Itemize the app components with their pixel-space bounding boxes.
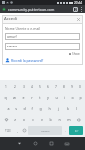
button[interactable]: b bbox=[46, 114, 55, 125]
staticText: y bbox=[47, 95, 49, 100]
staticText: i bbox=[64, 95, 65, 100]
button[interactable]: l bbox=[72, 103, 81, 114]
staticText: t bbox=[39, 95, 41, 100]
button[interactable]: Enter bbox=[69, 126, 83, 135]
button[interactable]: Emoji bbox=[20, 125, 28, 136]
staticText: j bbox=[58, 106, 59, 111]
button[interactable]: d bbox=[20, 103, 28, 114]
staticText: u bbox=[55, 95, 58, 100]
staticText: q bbox=[4, 95, 7, 100]
button[interactable]: Home bbox=[27, 137, 43, 150]
staticText: k bbox=[67, 106, 69, 111]
button[interactable]: w bbox=[10, 92, 19, 103]
button[interactable]: Switch keyboard bbox=[59, 137, 75, 150]
staticText: e bbox=[22, 95, 25, 100]
button[interactable]: Ricordi la password? bbox=[5, 58, 80, 63]
staticText: 1 bbox=[5, 85, 7, 89]
button[interactable]: s bbox=[12, 103, 20, 114]
button[interactable]: 5 bbox=[36, 81, 44, 92]
button[interactable]: c bbox=[28, 114, 37, 125]
staticText: l bbox=[76, 106, 77, 111]
staticText: 6 bbox=[47, 85, 49, 89]
button[interactable]: Back bbox=[11, 137, 27, 150]
button[interactable]: Recent apps bbox=[43, 137, 59, 150]
staticText: m bbox=[67, 117, 71, 122]
staticText: a bbox=[7, 106, 10, 111]
button[interactable]: Backspace bbox=[73, 114, 84, 125]
staticText: v bbox=[41, 117, 43, 122]
button[interactable]: 2 bbox=[10, 81, 19, 92]
button[interactable]: e bbox=[19, 92, 28, 103]
button[interactable]: n bbox=[55, 114, 64, 125]
staticText: 7 bbox=[55, 85, 57, 89]
staticText: c bbox=[32, 117, 34, 122]
button[interactable]: a bbox=[4, 103, 12, 114]
staticText: 5 bbox=[39, 85, 41, 89]
other: Secure connection bbox=[2, 7, 6, 11]
button[interactable]: ?123 bbox=[2, 125, 14, 136]
button[interactable]: 3 bbox=[19, 81, 28, 92]
staticText: p bbox=[79, 95, 82, 100]
button[interactable]: i bbox=[60, 92, 68, 103]
button[interactable]: g bbox=[36, 103, 45, 114]
staticText: Show bbox=[72, 52, 80, 56]
button[interactable]: z bbox=[11, 114, 19, 125]
staticText: 3 bbox=[23, 85, 25, 89]
staticText: Nome Utente o e-mail bbox=[5, 26, 41, 31]
staticText: 4 bbox=[31, 85, 33, 89]
button[interactable]: ••••••• bbox=[5, 43, 80, 50]
button[interactable]: 4 bbox=[28, 81, 36, 92]
staticText: b bbox=[49, 117, 52, 122]
button[interactable]: p bbox=[76, 92, 84, 103]
button[interactable]: Show bbox=[5, 52, 80, 56]
staticText: 20:44 bbox=[74, 1, 83, 5]
staticText: f bbox=[31, 106, 33, 111]
staticText: ?123 bbox=[5, 129, 11, 133]
button[interactable]: 6 bbox=[44, 81, 52, 92]
staticText: r bbox=[31, 95, 33, 100]
button[interactable]: y bbox=[44, 92, 52, 103]
button[interactable]: x bbox=[19, 114, 28, 125]
button[interactable]: r bbox=[28, 92, 36, 103]
button[interactable]: j bbox=[54, 103, 63, 114]
staticText: x bbox=[23, 117, 25, 122]
button[interactable]: Space bbox=[28, 126, 62, 135]
button[interactable]: Shift bbox=[1, 114, 11, 125]
staticText: n bbox=[58, 117, 61, 122]
staticText: s bbox=[15, 106, 17, 111]
button[interactable]: 0 bbox=[76, 81, 84, 92]
staticText: ••••••• bbox=[7, 44, 17, 49]
button[interactable]: amurf bbox=[5, 33, 80, 40]
button[interactable]: m bbox=[64, 114, 73, 125]
button[interactable]: Tabs bbox=[73, 7, 78, 12]
button[interactable]: 1 bbox=[1, 81, 10, 92]
button[interactable]: u bbox=[52, 92, 60, 103]
button[interactable]: f bbox=[28, 103, 36, 114]
button[interactable]: Close bbox=[76, 17, 81, 22]
button[interactable]: o bbox=[68, 92, 76, 103]
staticText: . bbox=[65, 129, 66, 133]
button[interactable]: 7 bbox=[52, 81, 60, 92]
button[interactable]: , bbox=[14, 125, 20, 136]
staticText: 2 bbox=[14, 85, 16, 89]
staticText: 0 bbox=[79, 85, 81, 89]
staticText: g bbox=[39, 106, 42, 111]
staticText: amurf bbox=[7, 34, 17, 39]
staticText: z bbox=[14, 117, 16, 122]
button[interactable]: q bbox=[1, 92, 10, 103]
staticText: d bbox=[23, 106, 26, 111]
button[interactable]: More options bbox=[80, 6, 83, 12]
staticText: Italiano bbox=[41, 129, 50, 132]
button[interactable]: v bbox=[37, 114, 46, 125]
staticText: 8 bbox=[63, 85, 65, 89]
staticText: h bbox=[48, 106, 51, 111]
staticText: 2 bbox=[75, 8, 77, 12]
staticText: o bbox=[71, 95, 74, 100]
button[interactable]: k bbox=[63, 103, 72, 114]
button[interactable]: 8 bbox=[60, 81, 68, 92]
button[interactable]: t bbox=[36, 92, 44, 103]
button[interactable]: h bbox=[45, 103, 54, 114]
button[interactable]: 9 bbox=[68, 81, 76, 92]
staticText: Accedi bbox=[4, 16, 76, 22]
